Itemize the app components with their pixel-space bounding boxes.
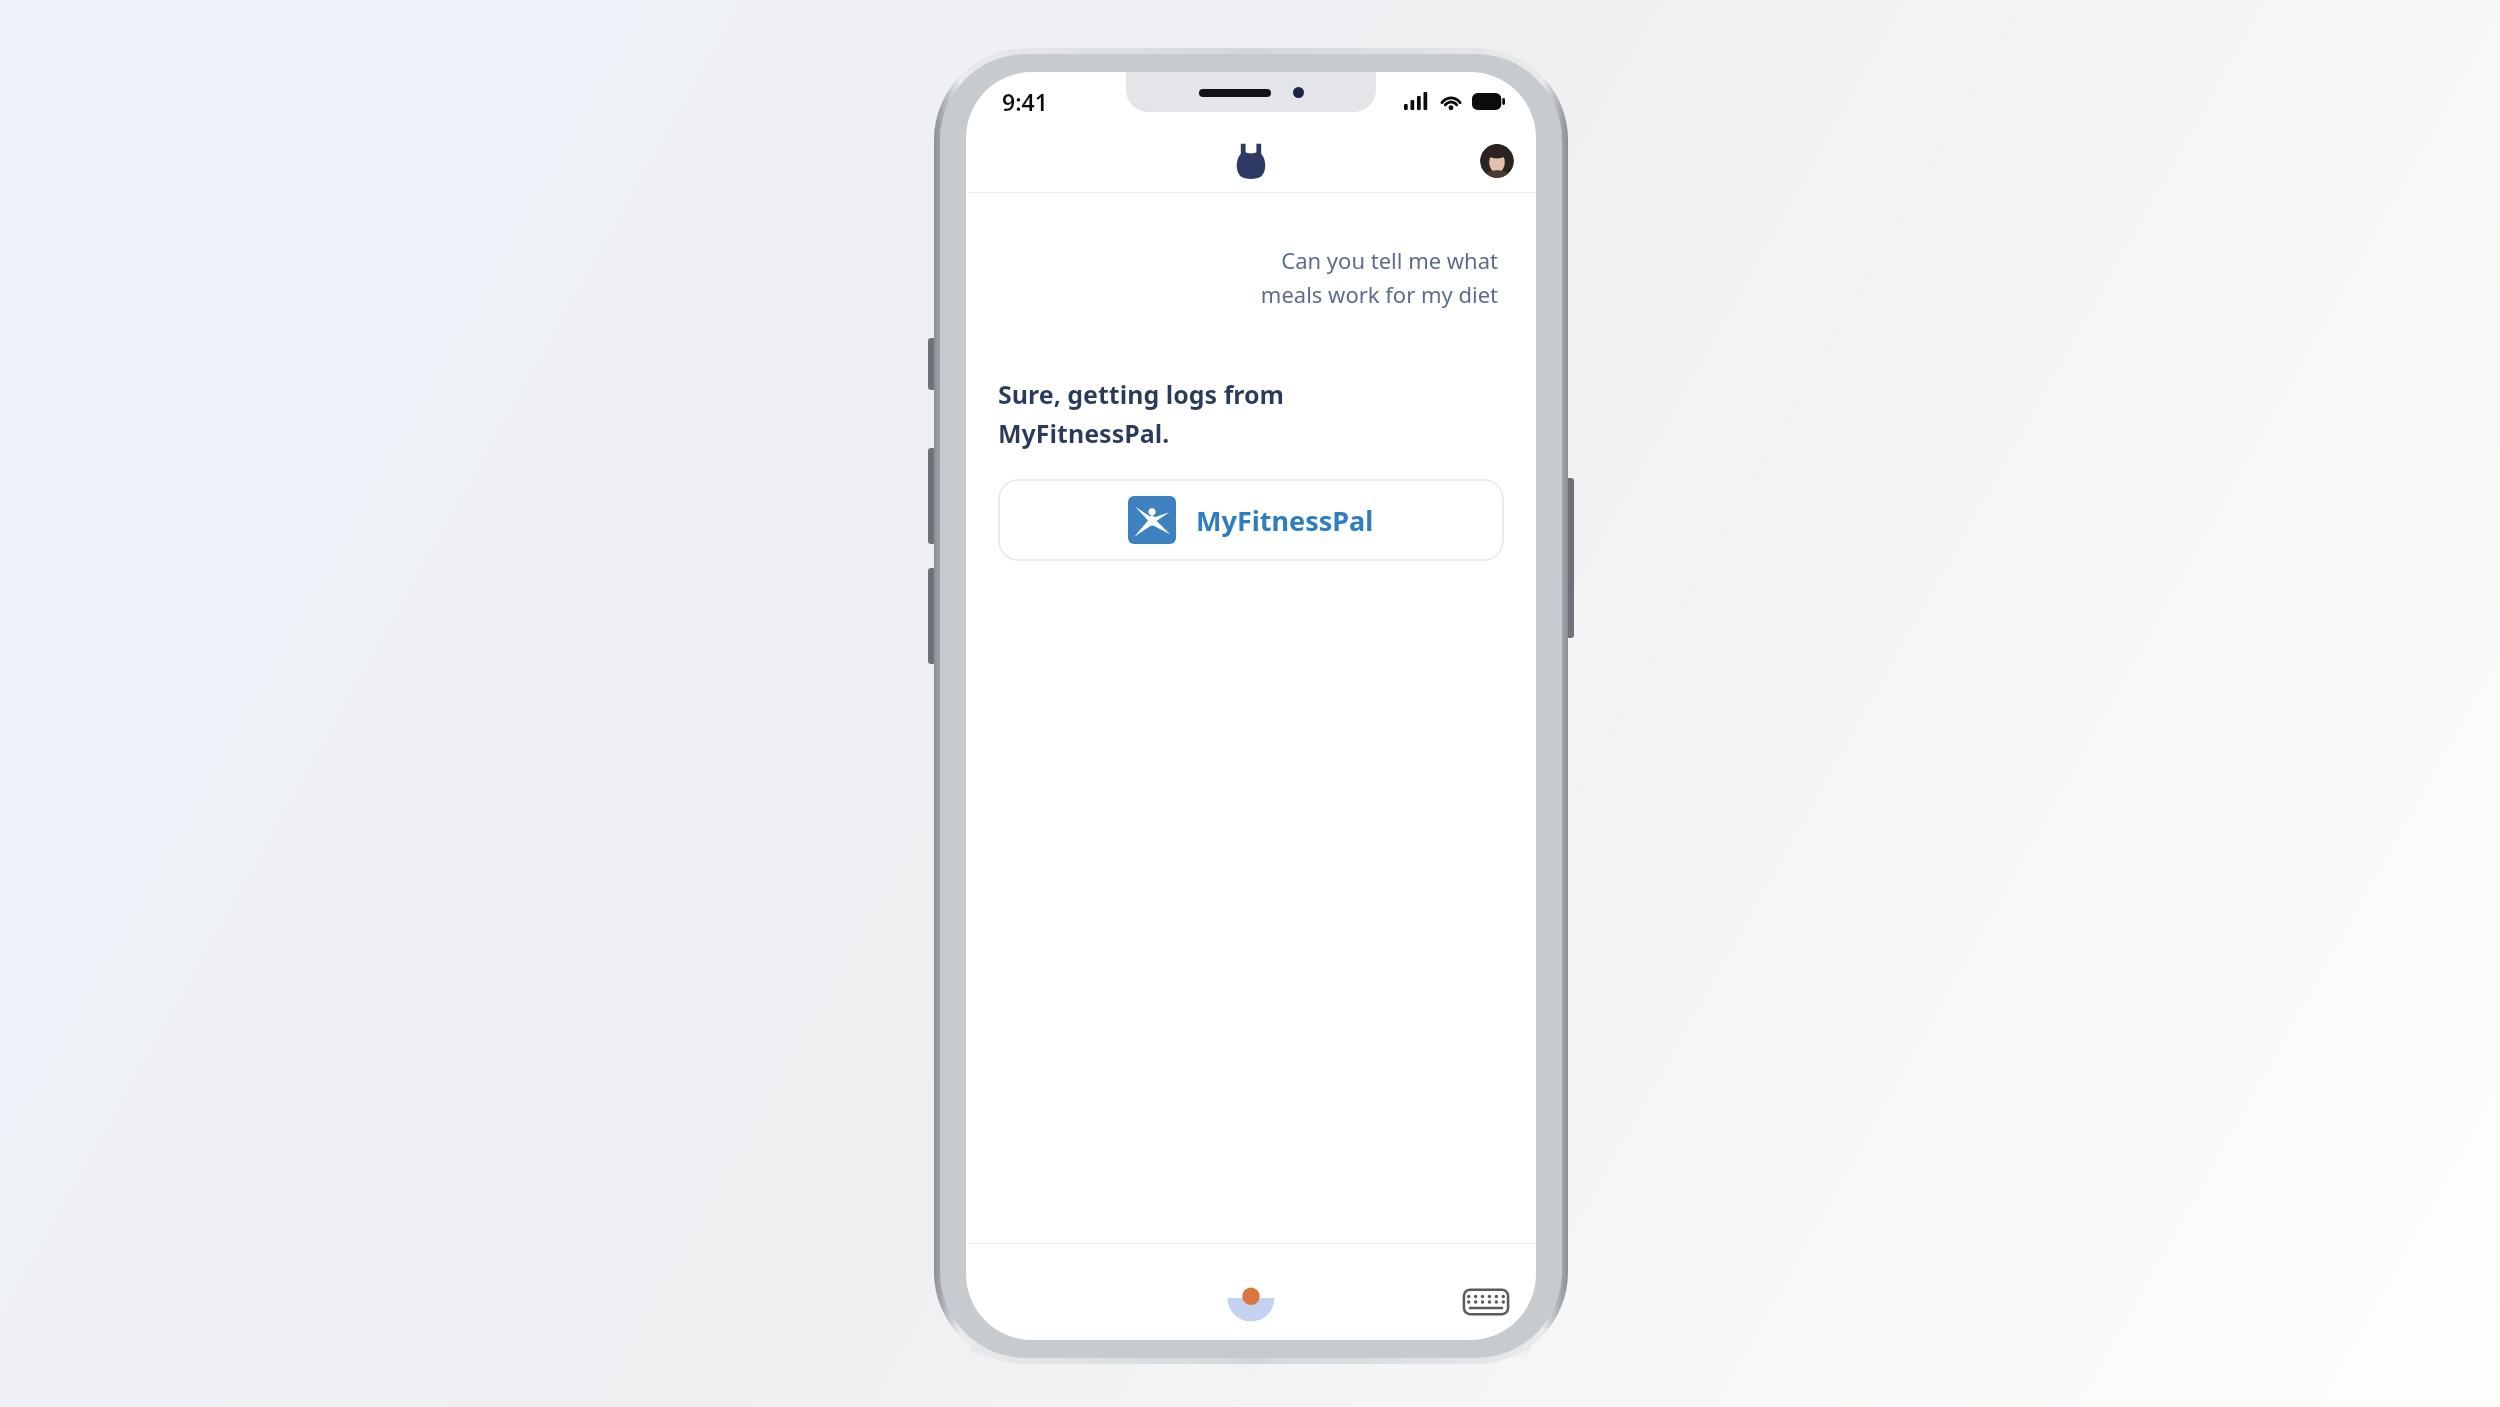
button[interactable]: Home bbox=[1225, 135, 1277, 187]
staticText: Can you tell me what meals work for my d… bbox=[966, 245, 1498, 309]
button[interactable]: Voice input bbox=[1219, 1266, 1283, 1330]
staticText: Sure, getting logs from MyFitnessPal. bbox=[998, 377, 1536, 451]
button[interactable]: Keyboard bbox=[1462, 1285, 1510, 1319]
button[interactable]: MyFitnessPal bbox=[998, 479, 1504, 561]
staticText: MyFitnessPal bbox=[1196, 502, 1374, 539]
staticText: 9:41 bbox=[1002, 86, 1048, 117]
button[interactable]: Profile bbox=[1480, 144, 1514, 178]
